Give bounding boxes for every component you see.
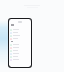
button[interactable] [9, 43, 31, 46]
button[interactable] [9, 46, 31, 49]
button[interactable] [9, 34, 31, 37]
button[interactable] [9, 31, 31, 34]
button[interactable] [9, 37, 31, 40]
button[interactable] [9, 49, 31, 52]
button[interactable] [9, 52, 31, 55]
button[interactable] [9, 28, 31, 31]
button[interactable] [9, 55, 31, 58]
button[interactable] [9, 58, 31, 61]
